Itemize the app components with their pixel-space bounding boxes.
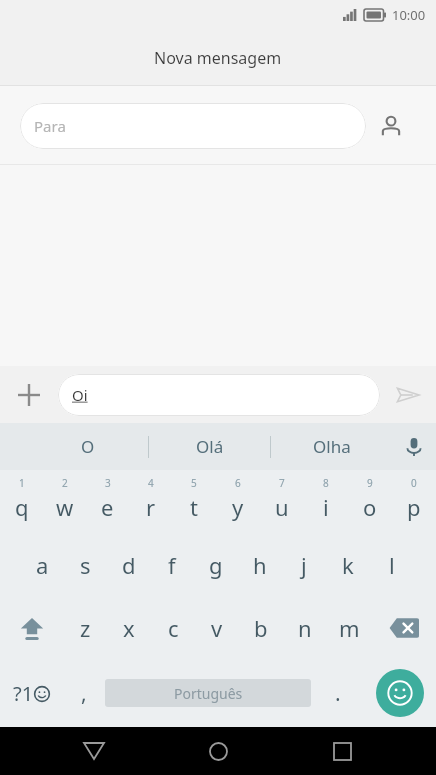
staticText: , <box>81 679 87 708</box>
staticText: 8 <box>323 476 329 490</box>
button[interactable]: h <box>238 533 282 596</box>
staticText: g <box>209 550 223 580</box>
button[interactable]: 3 <box>86 470 129 533</box>
staticText: . <box>335 679 341 708</box>
staticText: j <box>301 550 307 580</box>
staticText: o <box>363 492 377 522</box>
button[interactable]: O <box>28 423 148 470</box>
staticText: t <box>190 492 198 522</box>
staticText: k <box>342 550 354 580</box>
button[interactable]: Voltar <box>64 727 124 775</box>
button[interactable]: 7 <box>260 470 304 533</box>
staticText: v <box>211 613 223 643</box>
button[interactable]: 1 <box>0 470 43 533</box>
staticText: 2 <box>62 476 68 490</box>
staticText: 3 <box>105 476 111 490</box>
staticText: 0 <box>411 476 417 490</box>
button[interactable]: 0 <box>392 470 436 533</box>
button[interactable]: l <box>370 533 414 596</box>
staticText: w <box>56 492 74 522</box>
button[interactable]: 9 <box>348 470 392 533</box>
button[interactable]: v <box>195 596 239 659</box>
staticText: s <box>80 550 91 580</box>
button[interactable]: m <box>327 596 371 659</box>
staticText: p <box>407 492 421 522</box>
button[interactable]: g <box>194 533 238 596</box>
staticText: q <box>15 492 29 522</box>
button[interactable]: Olha <box>271 423 392 470</box>
staticText: 7 <box>279 476 285 490</box>
button[interactable]: d <box>107 533 150 596</box>
button[interactable]: 8 <box>304 470 348 533</box>
button[interactable]: , <box>62 659 105 727</box>
staticText: Português <box>174 684 243 703</box>
staticText: r <box>146 492 156 522</box>
button[interactable]: Entrada por voz <box>392 423 436 470</box>
button[interactable]: Escolher contato <box>366 86 416 165</box>
staticText: 10:00 <box>392 6 426 24</box>
button[interactable]: Adicionar anexo <box>0 366 58 423</box>
button[interactable]: Emoji <box>376 669 424 717</box>
staticText: u <box>275 492 289 522</box>
button[interactable]: Oi <box>58 374 380 416</box>
staticText: z <box>80 613 91 643</box>
staticText: 5 <box>191 476 197 490</box>
staticText: e <box>101 492 114 522</box>
button[interactable]: j <box>282 533 326 596</box>
button[interactable]: Para <box>20 103 366 149</box>
button[interactable]: Recentes <box>312 727 372 775</box>
button[interactable]: a <box>21 533 64 596</box>
button[interactable]: n <box>283 596 327 659</box>
staticText: n <box>298 613 312 643</box>
button[interactable]: z <box>64 596 107 659</box>
button[interactable]: x <box>107 596 151 659</box>
button[interactable]: b <box>239 596 283 659</box>
staticText: Nova mensagem <box>154 47 282 69</box>
button[interactable]: Apagar <box>371 596 436 659</box>
staticText: Olha <box>313 435 351 458</box>
staticText: i <box>323 492 329 522</box>
button[interactable]: Olá <box>149 423 270 470</box>
staticText: d <box>122 550 136 580</box>
staticText: c <box>168 613 179 643</box>
button[interactable]: f <box>150 533 194 596</box>
button[interactable]: s <box>64 533 107 596</box>
staticText: m <box>339 613 360 643</box>
button[interactable]: 5 <box>172 470 216 533</box>
staticText: Para <box>34 116 66 136</box>
staticText: Olá <box>196 435 224 458</box>
button[interactable]: c <box>151 596 195 659</box>
button[interactable]: ?1 <box>0 659 62 727</box>
button[interactable]: Início <box>188 727 248 775</box>
staticText: x <box>123 613 135 643</box>
staticText: l <box>389 550 395 580</box>
button[interactable]: Shift <box>0 596 64 659</box>
staticText: y <box>232 492 244 522</box>
staticText: 9 <box>367 476 373 490</box>
button[interactable]: 4 <box>129 470 172 533</box>
button[interactable]: Enviar <box>380 366 436 423</box>
staticText: 4 <box>148 476 154 490</box>
staticText: h <box>253 550 267 580</box>
staticText: ?1 <box>13 680 34 707</box>
staticText: f <box>168 550 176 580</box>
staticText: 1 <box>19 476 25 490</box>
staticText: O <box>81 435 95 458</box>
button[interactable]: Português <box>105 679 311 707</box>
staticText: Oi <box>72 385 88 405</box>
staticText: b <box>254 613 268 643</box>
button[interactable]: k <box>326 533 370 596</box>
staticText: a <box>36 550 49 580</box>
staticText: 6 <box>235 476 241 490</box>
button[interactable]: 6 <box>216 470 260 533</box>
button[interactable]: 2 <box>43 470 86 533</box>
button[interactable]: . <box>311 659 364 727</box>
